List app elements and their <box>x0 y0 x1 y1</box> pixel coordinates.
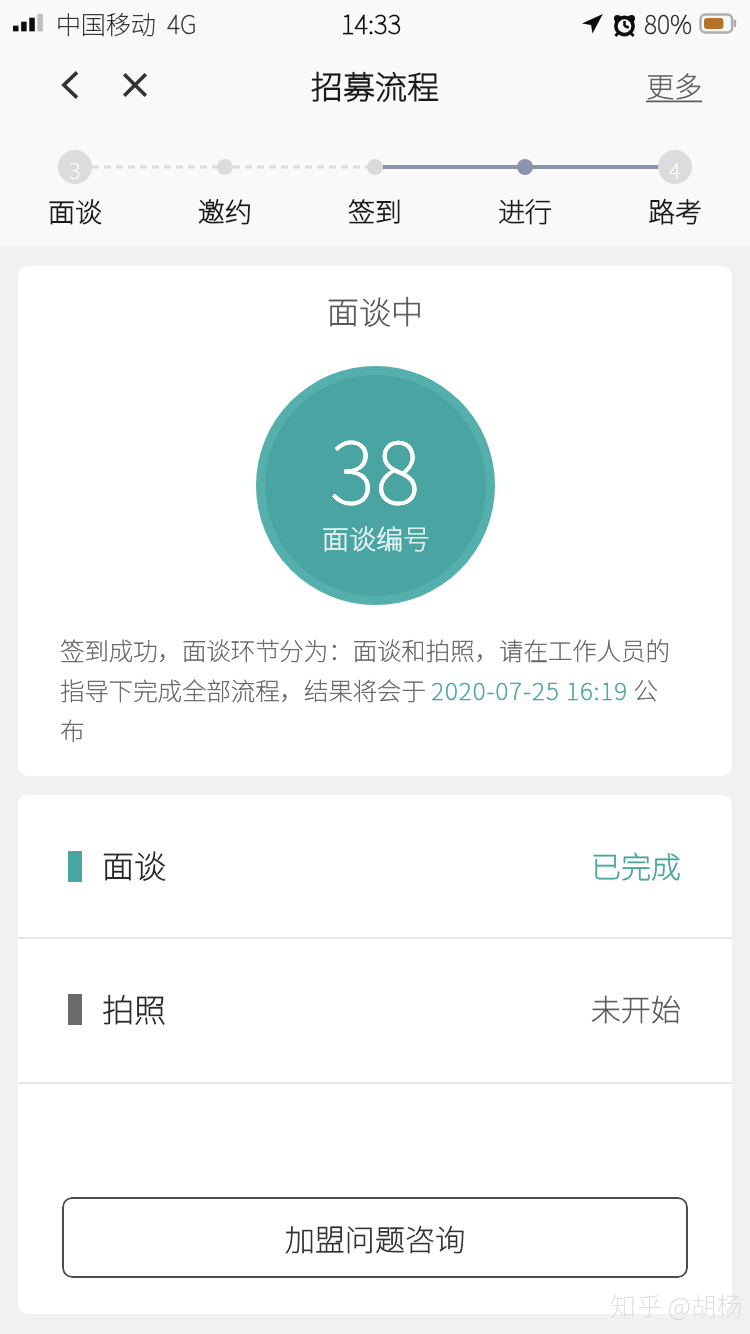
staticText: 80% <box>644 5 693 41</box>
staticText: 更多 <box>646 65 703 106</box>
button[interactable]: Close <box>112 62 158 108</box>
staticText: 更多 <box>646 65 703 106</box>
staticText: 面谈编号 <box>322 518 430 557</box>
button[interactable]: 3 <box>0 153 150 185</box>
staticText: 38 <box>330 405 422 528</box>
staticText: 进行 <box>498 191 552 230</box>
staticText: 知乎 @胡杨 <box>610 1286 743 1324</box>
staticText: 已完成 <box>591 843 681 886</box>
staticText: 面谈中 <box>327 287 424 333</box>
staticText: 中国移动 4G <box>56 5 197 41</box>
staticText: 进行 <box>498 191 552 230</box>
staticText: 签到成功，面谈环节分为：面谈和拍照，请在工作人员的指导下完成全部流程，结果将会于… <box>60 632 674 747</box>
staticText: 中国移动 4G <box>56 5 197 41</box>
button[interactable]: 加盟问题咨询 <box>62 1197 688 1278</box>
staticText: 3 <box>69 153 81 185</box>
staticText: 邀约 <box>198 191 252 230</box>
button[interactable]: 面谈 <box>18 795 732 937</box>
staticText: 路考 <box>648 191 702 230</box>
staticText: 未开始 <box>591 986 681 1029</box>
staticText: 面谈 <box>102 841 167 887</box>
staticText: 已完成 <box>591 843 681 886</box>
staticText: 加盟问题咨询 <box>285 1216 465 1259</box>
staticText: 面谈 <box>102 841 167 887</box>
staticText: 签到 <box>348 191 402 230</box>
staticText: 招募流程 <box>311 62 440 108</box>
staticText: 加盟问题咨询 <box>285 1216 465 1259</box>
staticText: 面谈中 <box>327 287 424 333</box>
staticText: 4 <box>669 153 681 185</box>
staticText: 38 <box>330 405 422 528</box>
staticText: 未开始 <box>591 986 681 1029</box>
staticText: 面谈 <box>48 191 102 230</box>
staticText: 面谈 <box>48 191 102 230</box>
button[interactable]: 拍照 <box>18 937 732 1082</box>
staticText: 80% <box>644 5 693 41</box>
staticText: 签到 <box>348 191 402 230</box>
staticText: 签到成功，面谈环节分为：面谈和拍照，请在工作人员的指导下完成全部流程，结果将会于… <box>60 632 674 747</box>
staticText: 路考 <box>648 191 702 230</box>
staticText: 14:33 <box>341 4 402 42</box>
staticText: 拍照 <box>102 985 167 1031</box>
staticText: 拍照 <box>102 985 167 1031</box>
button[interactable]: Back <box>48 62 94 108</box>
staticText: 邀约 <box>198 191 252 230</box>
button[interactable]: 4 <box>600 153 750 185</box>
staticText: 招募流程 <box>311 62 440 108</box>
staticText: 面谈编号 <box>322 518 430 557</box>
button[interactable]: 更多 <box>646 65 703 106</box>
